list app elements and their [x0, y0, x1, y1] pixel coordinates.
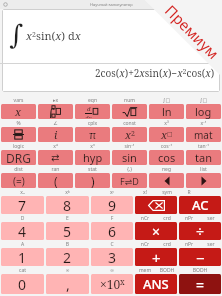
- staticText: d: [87, 105, 91, 113]
- staticText: ): [91, 173, 95, 188]
- button[interactable]: ÷: [179, 222, 221, 240]
- button[interactable]: π: [75, 127, 110, 142]
- button[interactable]: Square root: [112, 104, 147, 119]
- staticText: ser: [200, 241, 222, 248]
- staticText: F⇌D: [120, 175, 139, 187]
- button[interactable]: ): [75, 173, 110, 188]
- button[interactable]: ,: [46, 274, 89, 294]
- staticText: dist: [0, 166, 37, 173]
- staticText: ∫□: [185, 97, 222, 103]
- staticText: neg: [148, 166, 185, 173]
- button[interactable]: −: [179, 248, 221, 266]
- button[interactable]: 2: [46, 248, 89, 266]
- staticText: dx: [85, 114, 92, 118]
- staticText: Премиум: [161, 0, 222, 63]
- staticText: ,: [66, 275, 70, 294]
- staticText: nCr: [134, 215, 156, 222]
- staticText: =: [196, 275, 205, 294]
- button[interactable]: Derivative: [75, 104, 110, 119]
- staticText: vars: [0, 97, 37, 104]
- button[interactable]: hyp: [75, 150, 110, 165]
- button[interactable]: AC: [179, 196, 221, 214]
- button[interactable]: ×10x: [91, 274, 133, 294]
- button[interactable]: 7: [1, 196, 44, 214]
- staticText: x⁻¹: [185, 120, 222, 127]
- button[interactable]: 8: [46, 196, 89, 214]
- button[interactable]: ANS: [135, 274, 177, 294]
- button[interactable]: 3: [91, 248, 133, 266]
- staticText: ∫: [47, 105, 55, 118]
- staticText: AC: [192, 196, 209, 214]
- staticText: stat: [74, 166, 111, 173]
- staticText: E: [45, 215, 90, 222]
- button[interactable]: =: [179, 274, 221, 294]
- staticText: const: [111, 120, 148, 127]
- staticText: list: [185, 166, 222, 173]
- button[interactable]: cos: [149, 150, 184, 165]
- button[interactable]: ln: [149, 104, 184, 119]
- staticText: mem: [134, 267, 156, 274]
- staticText: x³: [148, 120, 185, 127]
- button[interactable]: 4: [1, 222, 44, 240]
- staticText: i: [54, 127, 58, 142]
- button[interactable]: Fraction: [1, 127, 36, 142]
- button[interactable]: tan: [186, 150, 221, 165]
- button[interactable]: Left: [149, 173, 184, 188]
- staticText: ∫: [9, 19, 24, 50]
- button[interactable]: i: [38, 127, 73, 142]
- staticText: eqn: [74, 97, 111, 104]
- button[interactable]: 5: [46, 222, 89, 240]
- staticText: F: [90, 215, 134, 222]
- button[interactable]: ×: [135, 222, 177, 240]
- staticText: cos⁻¹: [148, 143, 185, 150]
- staticText: ▸x: [37, 97, 74, 104]
- button[interactable]: +: [135, 248, 177, 266]
- staticText: cat: [0, 267, 45, 274]
- button[interactable]: log: [186, 104, 221, 119]
- staticText: log: [195, 104, 212, 119]
- button[interactable]: 6: [91, 222, 133, 240]
- staticText: sin⁻¹: [111, 143, 148, 150]
- staticText: R: [178, 189, 200, 196]
- staticText: x⁴: [37, 143, 74, 150]
- staticText: Научный калькулятор: [90, 2, 133, 7]
- staticText: A: [0, 241, 45, 248]
- button[interactable]: mat: [186, 127, 221, 142]
- staticText: +: [152, 248, 161, 266]
- staticText: D: [0, 215, 45, 222]
- staticText: hyp: [83, 150, 103, 165]
- staticText: ∞: [45, 267, 90, 273]
- button[interactable]: Integral: [38, 104, 73, 119]
- button[interactable]: ⇄: [38, 150, 73, 165]
- staticText: ∞: [90, 267, 134, 273]
- button[interactable]: x2: [112, 127, 147, 142]
- staticText: ∠: [37, 120, 74, 126]
- staticText: x□: [161, 127, 173, 142]
- staticText: 4: [18, 222, 27, 240]
- staticText: cos: [158, 150, 176, 165]
- staticText: ÷: [196, 222, 205, 240]
- button[interactable]: x□: [149, 127, 184, 142]
- button[interactable]: (=): [1, 173, 36, 188]
- button[interactable]: sin: [112, 150, 147, 165]
- staticText: xₐ: [0, 189, 45, 196]
- button[interactable]: Right: [186, 173, 221, 188]
- staticText: tan: [195, 150, 212, 165]
- staticText: cplx: [74, 120, 111, 127]
- button[interactable]: F⇌D: [112, 173, 147, 188]
- staticText: (: [54, 173, 58, 188]
- staticText: DRG: [6, 150, 31, 165]
- button[interactable]: 0: [1, 274, 44, 294]
- staticText: 9: [108, 196, 117, 214]
- button[interactable]: (: [38, 173, 73, 188]
- button[interactable]: x: [1, 104, 36, 119]
- staticText: sym: [156, 189, 178, 196]
- staticText: 2cos(x)+2xsin(x)−x2cos(x): [95, 66, 215, 80]
- button[interactable]: DRG: [1, 150, 36, 165]
- staticText: ∫□: [148, 97, 185, 103]
- staticText: {,}: [111, 166, 148, 173]
- button[interactable]: 9: [91, 196, 133, 214]
- staticText: ×: [152, 222, 161, 240]
- button[interactable]: 1: [1, 248, 44, 266]
- button[interactable]: Backspace: [135, 196, 177, 214]
